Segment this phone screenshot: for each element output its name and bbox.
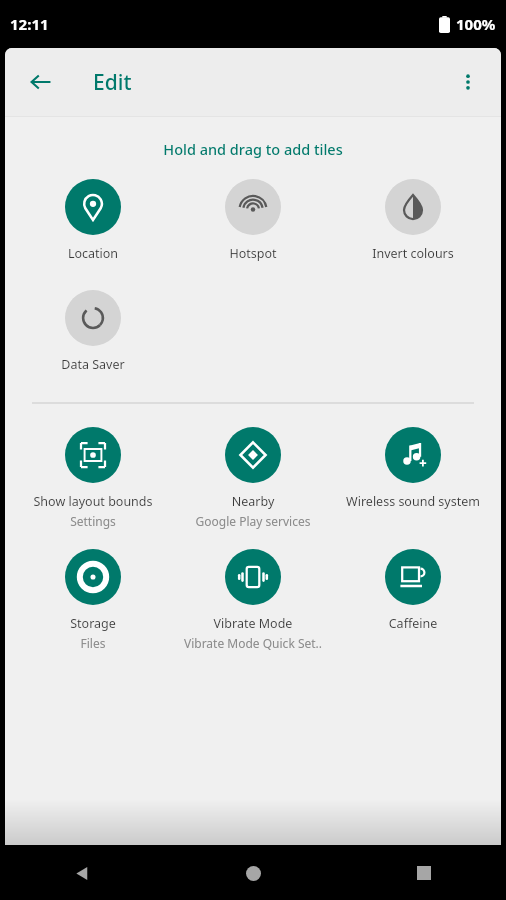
- staticText: Show layout bounds: [15, 493, 171, 510]
- button[interactable]: Back: [60, 851, 104, 895]
- staticText: Location: [15, 245, 171, 262]
- staticText: Vibrate Mode Quick Set..: [175, 635, 331, 651]
- other: Storage: [65, 549, 121, 605]
- button[interactable]: More options: [447, 61, 489, 103]
- button[interactable]: Invert colours: [333, 179, 493, 262]
- other: Show layout bounds: [65, 427, 121, 483]
- button[interactable]: Hotspot: [173, 179, 333, 262]
- button[interactable]: Vibrate Mode: [173, 549, 333, 651]
- staticText: 100%: [456, 14, 496, 34]
- other: Data Saver: [65, 290, 121, 346]
- other: Location: [65, 179, 121, 235]
- button[interactable]: Storage: [13, 549, 173, 651]
- button[interactable]: Show layout bounds: [13, 427, 173, 529]
- other: Hotspot: [225, 179, 281, 235]
- staticText: Nearby: [175, 493, 331, 510]
- button[interactable]: Home: [231, 851, 275, 895]
- staticText: Vibrate Mode: [175, 615, 331, 632]
- button[interactable]: Nearby: [173, 427, 333, 529]
- other: Wireless sound system: [385, 427, 441, 483]
- staticText: Caffeine: [335, 615, 491, 632]
- button[interactable]: Caffeine: [333, 549, 493, 632]
- staticText: Hold and drag to add tiles: [5, 139, 501, 159]
- other: Nearby: [225, 427, 281, 483]
- staticText: Edit: [93, 68, 132, 97]
- staticText: Settings: [15, 513, 171, 529]
- staticText: Storage: [15, 615, 171, 632]
- other: Invert colours: [385, 179, 441, 235]
- staticText: Data Saver: [15, 356, 171, 373]
- staticText: Invert colours: [335, 245, 491, 262]
- other: Vibrate Mode: [225, 549, 281, 605]
- button[interactable]: Wireless sound system: [333, 427, 493, 510]
- staticText: Wireless sound system: [335, 493, 491, 510]
- other: Caffeine: [385, 549, 441, 605]
- button[interactable]: Data Saver: [13, 290, 173, 373]
- staticText: Google Play services: [175, 513, 331, 529]
- button[interactable]: Recents: [402, 851, 446, 895]
- staticText: 12:11: [10, 14, 49, 34]
- staticText: Files: [15, 635, 171, 651]
- staticText: Hotspot: [175, 245, 331, 262]
- button[interactable]: Location: [13, 179, 173, 262]
- button[interactable]: Back: [19, 60, 63, 104]
